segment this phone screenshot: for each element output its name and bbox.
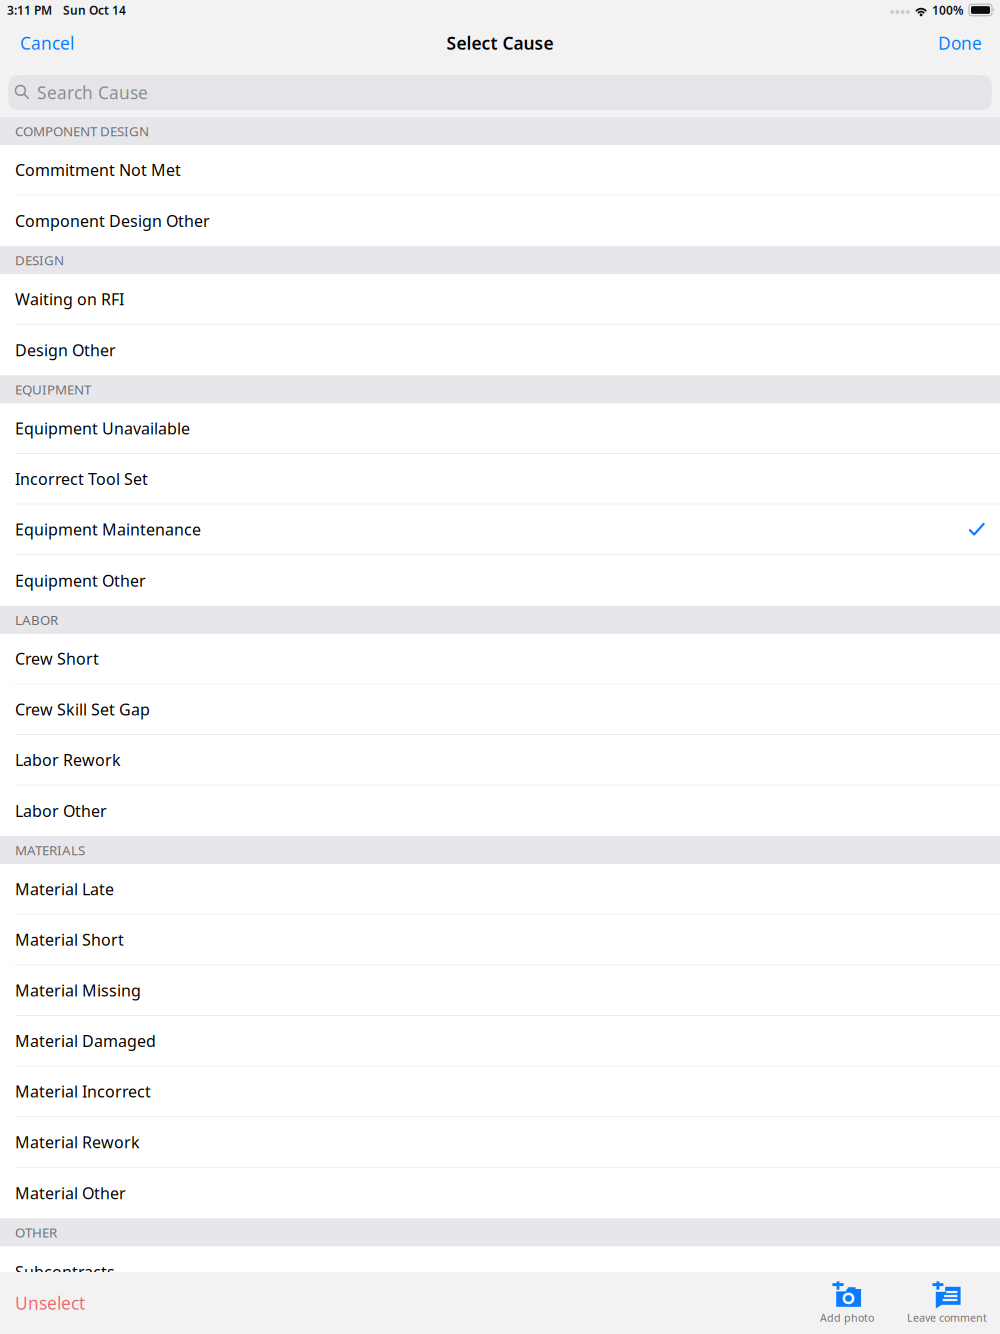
staticText: Crew Short	[15, 648, 99, 669]
staticText: Crew Skill Set Gap	[15, 699, 150, 720]
button[interactable]: Subcontracts	[0, 1246, 1000, 1297]
button[interactable]: Waiting on RFI	[0, 274, 1000, 325]
staticText: Design Other	[15, 339, 116, 361]
button[interactable]: Incorrect Tool Set	[0, 454, 1000, 505]
staticText: Labor Other	[15, 800, 107, 821]
button[interactable]: Material Incorrect	[0, 1067, 1000, 1117]
staticText: Waiting on RFI	[15, 288, 124, 310]
staticText: 100%	[932, 2, 964, 18]
staticText: Select Cause	[446, 31, 553, 54]
button[interactable]: Done	[934, 22, 986, 63]
button[interactable]: Equipment Unavailable	[0, 403, 1000, 454]
button[interactable]: Material Late	[0, 864, 1000, 915]
button[interactable]: Component Design Other	[0, 196, 1000, 246]
staticText: Labor Rework	[15, 749, 121, 770]
button[interactable]: Equipment Maintenance	[0, 505, 1000, 555]
staticText: Done	[938, 31, 982, 54]
button[interactable]: Material Other	[0, 1168, 1000, 1218]
button[interactable]: Material Rework	[0, 1117, 1000, 1168]
staticText: Cancel	[20, 31, 74, 54]
button[interactable]: Crew Skill Set Gap	[0, 684, 1000, 735]
staticText: Material Late	[15, 878, 114, 900]
button[interactable]: Material Missing	[0, 965, 1000, 1016]
button[interactable]: Material Damaged	[0, 1016, 1000, 1067]
staticText: DESIGN	[15, 251, 64, 269]
staticText: MATERIALS	[15, 841, 85, 859]
staticText: Material Missing	[15, 980, 141, 1001]
button[interactable]: Labor Other	[0, 786, 1000, 836]
staticText: OTHER	[15, 1223, 57, 1241]
staticText: Equipment Maintenance	[15, 519, 201, 540]
button[interactable]: Equipment Other	[0, 555, 1000, 606]
staticText: Material Incorrect	[15, 1081, 151, 1102]
button[interactable]: Design Other	[0, 325, 1000, 375]
staticText: Subcontracts	[15, 1261, 115, 1282]
button[interactable]: Leave comment	[894, 1271, 1000, 1334]
staticText: Search Cause	[37, 81, 148, 104]
staticText: Equipment Unavailable	[15, 418, 190, 439]
staticText: Sun Oct 14	[63, 2, 126, 18]
staticText: Commitment Not Met	[15, 159, 181, 180]
staticText: LABOR	[15, 611, 58, 629]
staticText: Unselect	[15, 1291, 85, 1314]
button[interactable]: Crew Short	[0, 634, 1000, 684]
staticText: Incorrect Tool Set	[15, 468, 148, 489]
staticText: Material Short	[15, 929, 124, 950]
button[interactable]: Labor Rework	[0, 735, 1000, 786]
staticText: Component Design Other	[15, 210, 210, 231]
button[interactable]: Search Cause	[8, 75, 992, 110]
staticText: Material Rework	[15, 1131, 140, 1153]
button[interactable]: Unselect	[11, 1281, 89, 1324]
staticText: Material Other	[15, 1182, 126, 1204]
staticText: Equipment Other	[15, 570, 146, 591]
staticText: Add photo	[820, 1310, 874, 1325]
button[interactable]: Commitment Not Met	[0, 145, 1000, 196]
staticText: Material Damaged	[15, 1030, 156, 1051]
button[interactable]: Cancel	[16, 22, 78, 63]
button[interactable]: Material Short	[0, 915, 1000, 965]
staticText: COMPONENT DESIGN	[15, 122, 149, 140]
staticText: 3:11 PM	[7, 2, 52, 18]
button[interactable]: Add photo	[800, 1271, 894, 1334]
staticText: EQUIPMENT	[15, 380, 91, 398]
staticText: Leave comment	[907, 1310, 987, 1325]
